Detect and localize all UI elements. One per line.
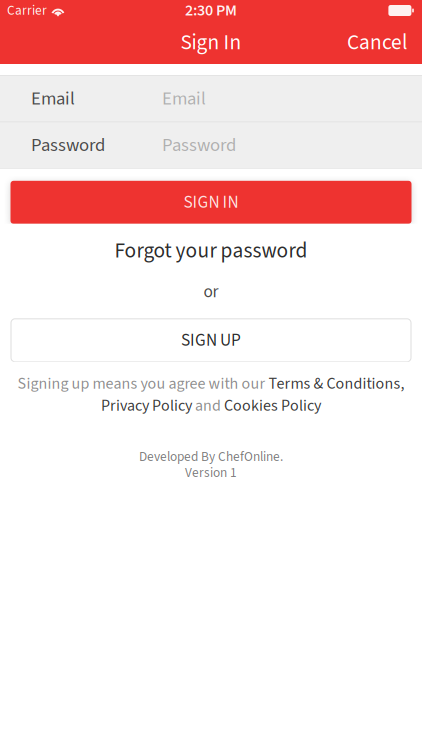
staticText: Terms & Conditions,: [268, 372, 404, 395]
staticText: Developed By ChefOnline.: [139, 447, 283, 466]
button[interactable]: Cookies Policy: [224, 394, 321, 417]
staticText: Cancel: [347, 27, 407, 58]
staticText: Cookies Policy: [224, 394, 321, 417]
staticText: SIGN UP: [181, 328, 241, 353]
staticText: Sign In: [180, 27, 241, 58]
button[interactable]: Privacy Policy: [101, 394, 192, 417]
staticText: Carrier: [7, 1, 47, 20]
staticText: Forgot your password: [114, 236, 307, 266]
staticText: Password: [162, 132, 236, 158]
button[interactable]: Terms & Conditions,: [268, 372, 404, 395]
staticText: Email: [162, 85, 206, 112]
staticText: Privacy Policy: [101, 394, 192, 417]
staticText: Version 1: [185, 463, 237, 482]
staticText: Password: [31, 132, 105, 158]
staticText: or: [203, 279, 218, 304]
button[interactable]: Cancel: [339, 18, 415, 67]
staticText: and: [192, 394, 224, 417]
staticText: Signing up means you agree with our: [17, 372, 268, 395]
button[interactable]: SIGN UP: [11, 319, 411, 362]
staticText: 2:30 PM: [185, 0, 237, 22]
button[interactable]: Forgot your password: [0, 236, 422, 266]
button[interactable]: SIGN IN: [10, 181, 411, 224]
staticText: Email: [31, 85, 75, 112]
staticText: SIGN IN: [183, 190, 238, 215]
